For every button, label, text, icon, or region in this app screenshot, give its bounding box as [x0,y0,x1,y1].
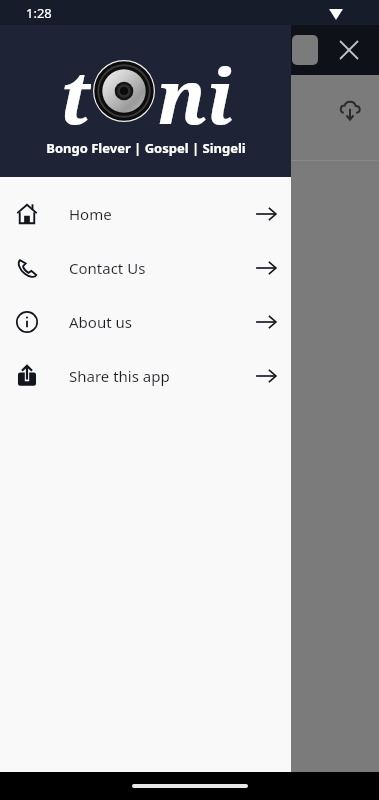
staticText: 1:28 [26,4,52,22]
button[interactable]: About us [0,295,291,349]
staticText: Share this app [69,366,170,386]
button[interactable]: Contact Us [0,241,291,295]
staticText: Home [69,204,112,224]
button[interactable]: Share this app [0,349,291,403]
button[interactable]: Close [329,30,369,70]
staticText: Bongo Flever | Gospel | Singeli [46,139,246,157]
button[interactable]: Home [0,187,291,241]
staticText: t [60,45,91,137]
staticText: Contact Us [69,258,146,278]
staticText: About us [69,312,132,332]
staticText: ni [157,45,233,137]
button[interactable]: Download [333,93,367,127]
